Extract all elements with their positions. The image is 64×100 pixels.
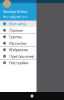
staticText: Kseniya Beker <box>3 9 28 14</box>
staticText: Рассылки <box>9 41 26 46</box>
button[interactable]: Настройки <box>0 59 36 66</box>
staticText: Группы <box>9 34 22 39</box>
staticText: Настройки <box>9 60 28 65</box>
staticText: kseniya@gmail.com <box>3 15 27 19</box>
button[interactable]: Личные <box>0 27 36 33</box>
staticText: Все чаты <box>9 21 26 26</box>
button[interactable]: Избранное <box>0 46 36 53</box>
button[interactable]: Рассылки <box>0 40 36 46</box>
button[interactable]: Приглашения <box>0 53 36 59</box>
staticText: Избранное <box>9 47 28 52</box>
staticText: Личные <box>9 28 23 33</box>
button[interactable]: Все чаты <box>0 20 36 27</box>
button[interactable]: Группы <box>0 33 36 40</box>
staticText: Приглашения <box>9 54 34 59</box>
